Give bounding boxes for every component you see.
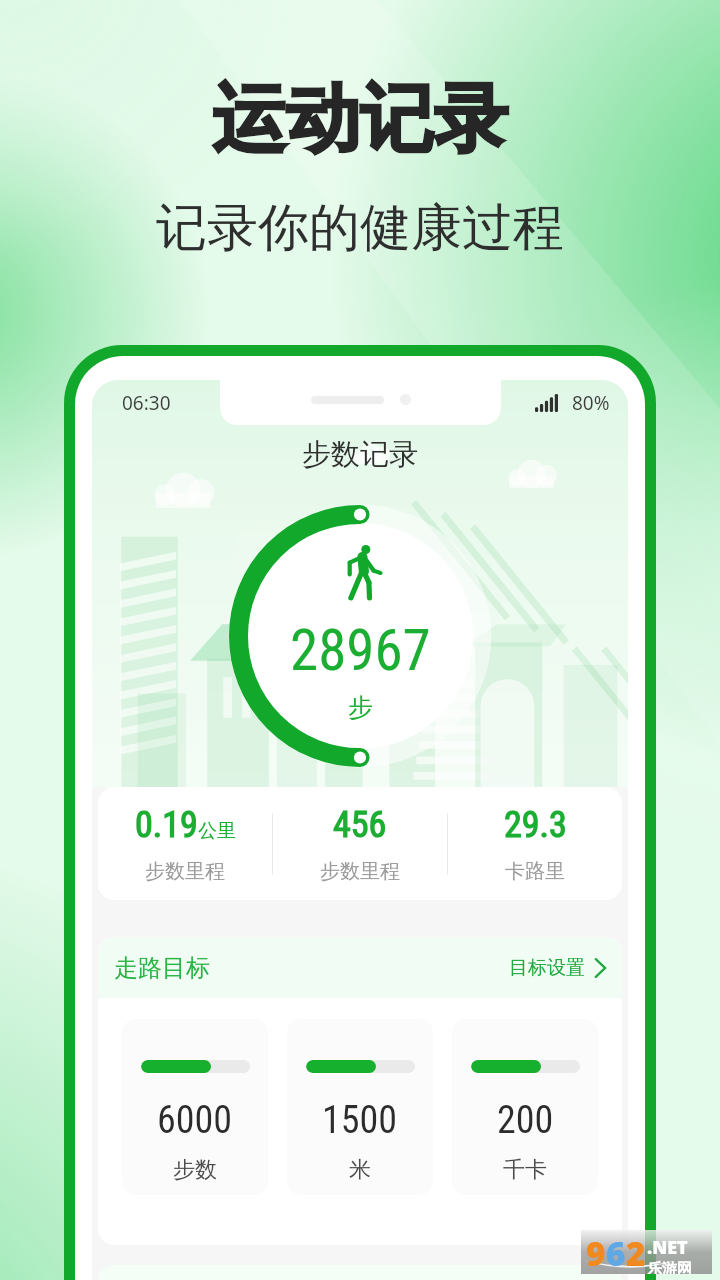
staticText: 运动记录 <box>0 73 720 166</box>
staticText: 步 <box>348 692 373 723</box>
staticText: 卡路里 <box>505 859 565 884</box>
staticText: 28967 <box>290 617 431 684</box>
staticText: 06:30 <box>122 390 171 416</box>
staticText: 走路目标 <box>114 953 210 983</box>
staticText: 9 <box>586 1231 606 1274</box>
staticText: 米 <box>349 1156 371 1184</box>
staticText: .NET <box>647 1235 688 1260</box>
button[interactable]: 1500 <box>287 1019 433 1195</box>
button[interactable]: 6000 <box>122 1019 268 1195</box>
staticText: 记录你的健康过程 <box>0 196 720 260</box>
staticText: 80% <box>572 390 610 416</box>
staticText: 步数里程 <box>320 859 400 884</box>
staticText: 步数里程 <box>145 859 225 884</box>
staticText: 步数 <box>173 1156 217 1184</box>
staticText: 6000 <box>157 1098 233 1143</box>
staticText: 目标设置 <box>509 956 585 980</box>
staticText: 200 <box>497 1098 554 1143</box>
staticText: 0.19 <box>135 804 198 846</box>
button[interactable]: 目标设置 <box>509 956 606 980</box>
button[interactable]: 0.19 <box>98 804 272 884</box>
button[interactable]: 456 <box>273 804 447 884</box>
staticText: 步数记录 <box>302 436 418 473</box>
staticText: 456 <box>333 804 387 846</box>
staticText: 2 <box>626 1231 646 1274</box>
staticText: 公里 <box>198 819 236 843</box>
button[interactable]: 200 <box>452 1019 598 1195</box>
staticText: 6 <box>606 1231 626 1274</box>
staticText: 千卡 <box>503 1156 547 1184</box>
button[interactable]: 29.3 <box>448 804 622 884</box>
staticText: 1500 <box>322 1098 398 1143</box>
staticText: 乐游网 <box>647 1260 692 1274</box>
staticText: 29.3 <box>504 804 567 846</box>
